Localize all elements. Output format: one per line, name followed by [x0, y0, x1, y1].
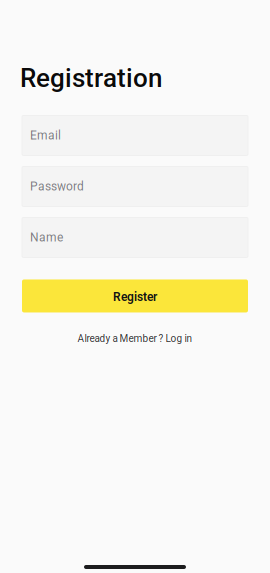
button[interactable]: Register: [22, 279, 248, 312]
button[interactable]: Already a Member ? Log in: [22, 328, 248, 348]
staticText: Registration: [20, 63, 162, 93]
staticText: Email: [30, 128, 61, 142]
button[interactable]: Password: [22, 166, 248, 206]
staticText: Register: [113, 290, 157, 304]
staticText: Name: [30, 230, 63, 244]
button[interactable]: Name: [22, 217, 248, 257]
button[interactable]: Email: [22, 115, 248, 155]
staticText: Already a Member ? Log in: [77, 333, 192, 344]
staticText: Password: [30, 179, 84, 193]
